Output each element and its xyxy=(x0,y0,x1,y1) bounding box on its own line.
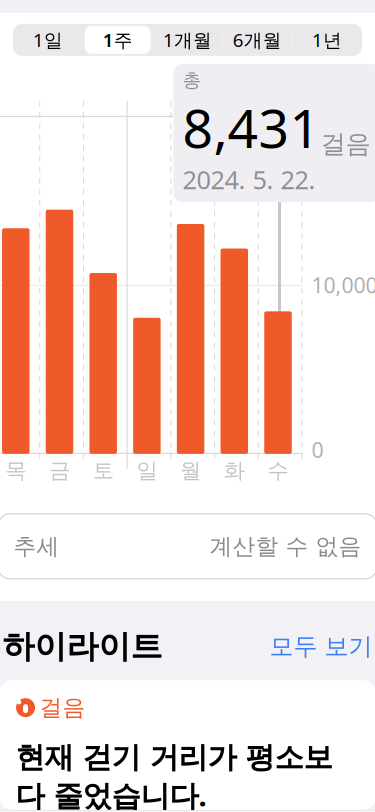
staticText: 걸음 xyxy=(39,694,85,721)
staticText: 모두 보기 xyxy=(269,632,372,661)
button[interactable]: 1개월 xyxy=(153,24,222,56)
staticText: 목 xyxy=(5,458,26,484)
staticText: 걸음 xyxy=(320,128,370,160)
staticText: 8,431 xyxy=(182,92,320,163)
staticText: 6개월 xyxy=(233,27,282,52)
button[interactable]: 1일 xyxy=(13,24,83,56)
staticText: 10,000 xyxy=(311,271,375,299)
staticText: 월 xyxy=(180,458,201,484)
staticText: 총 xyxy=(182,69,201,92)
button[interactable]: 걸음 xyxy=(0,680,375,810)
staticText: 1일 xyxy=(33,27,63,52)
staticText: 일 xyxy=(136,458,157,484)
button[interactable]: 1주 xyxy=(83,24,153,56)
staticText: 0 xyxy=(311,435,323,464)
staticText: 현재 걷기 거리가 평소보다 줄었습니다. xyxy=(15,740,332,812)
staticText: 2024. 5. 22. xyxy=(182,163,315,196)
button[interactable]: 1년 xyxy=(292,24,362,56)
staticText: 화 xyxy=(224,458,245,484)
staticText: 금 xyxy=(49,458,70,484)
staticText: 추세 xyxy=(13,532,59,560)
staticText: 수 xyxy=(267,458,288,484)
staticText: 하이라이트 xyxy=(2,627,162,666)
staticText: 1개월 xyxy=(163,27,212,52)
staticText: 계산할 수 없음 xyxy=(209,532,361,560)
button[interactable]: 모두 보기 xyxy=(269,628,372,665)
staticText: 토 xyxy=(93,458,114,484)
staticText: 1년 xyxy=(312,27,342,52)
staticText: 1주 xyxy=(103,27,133,52)
button[interactable]: 6개월 xyxy=(222,24,292,56)
